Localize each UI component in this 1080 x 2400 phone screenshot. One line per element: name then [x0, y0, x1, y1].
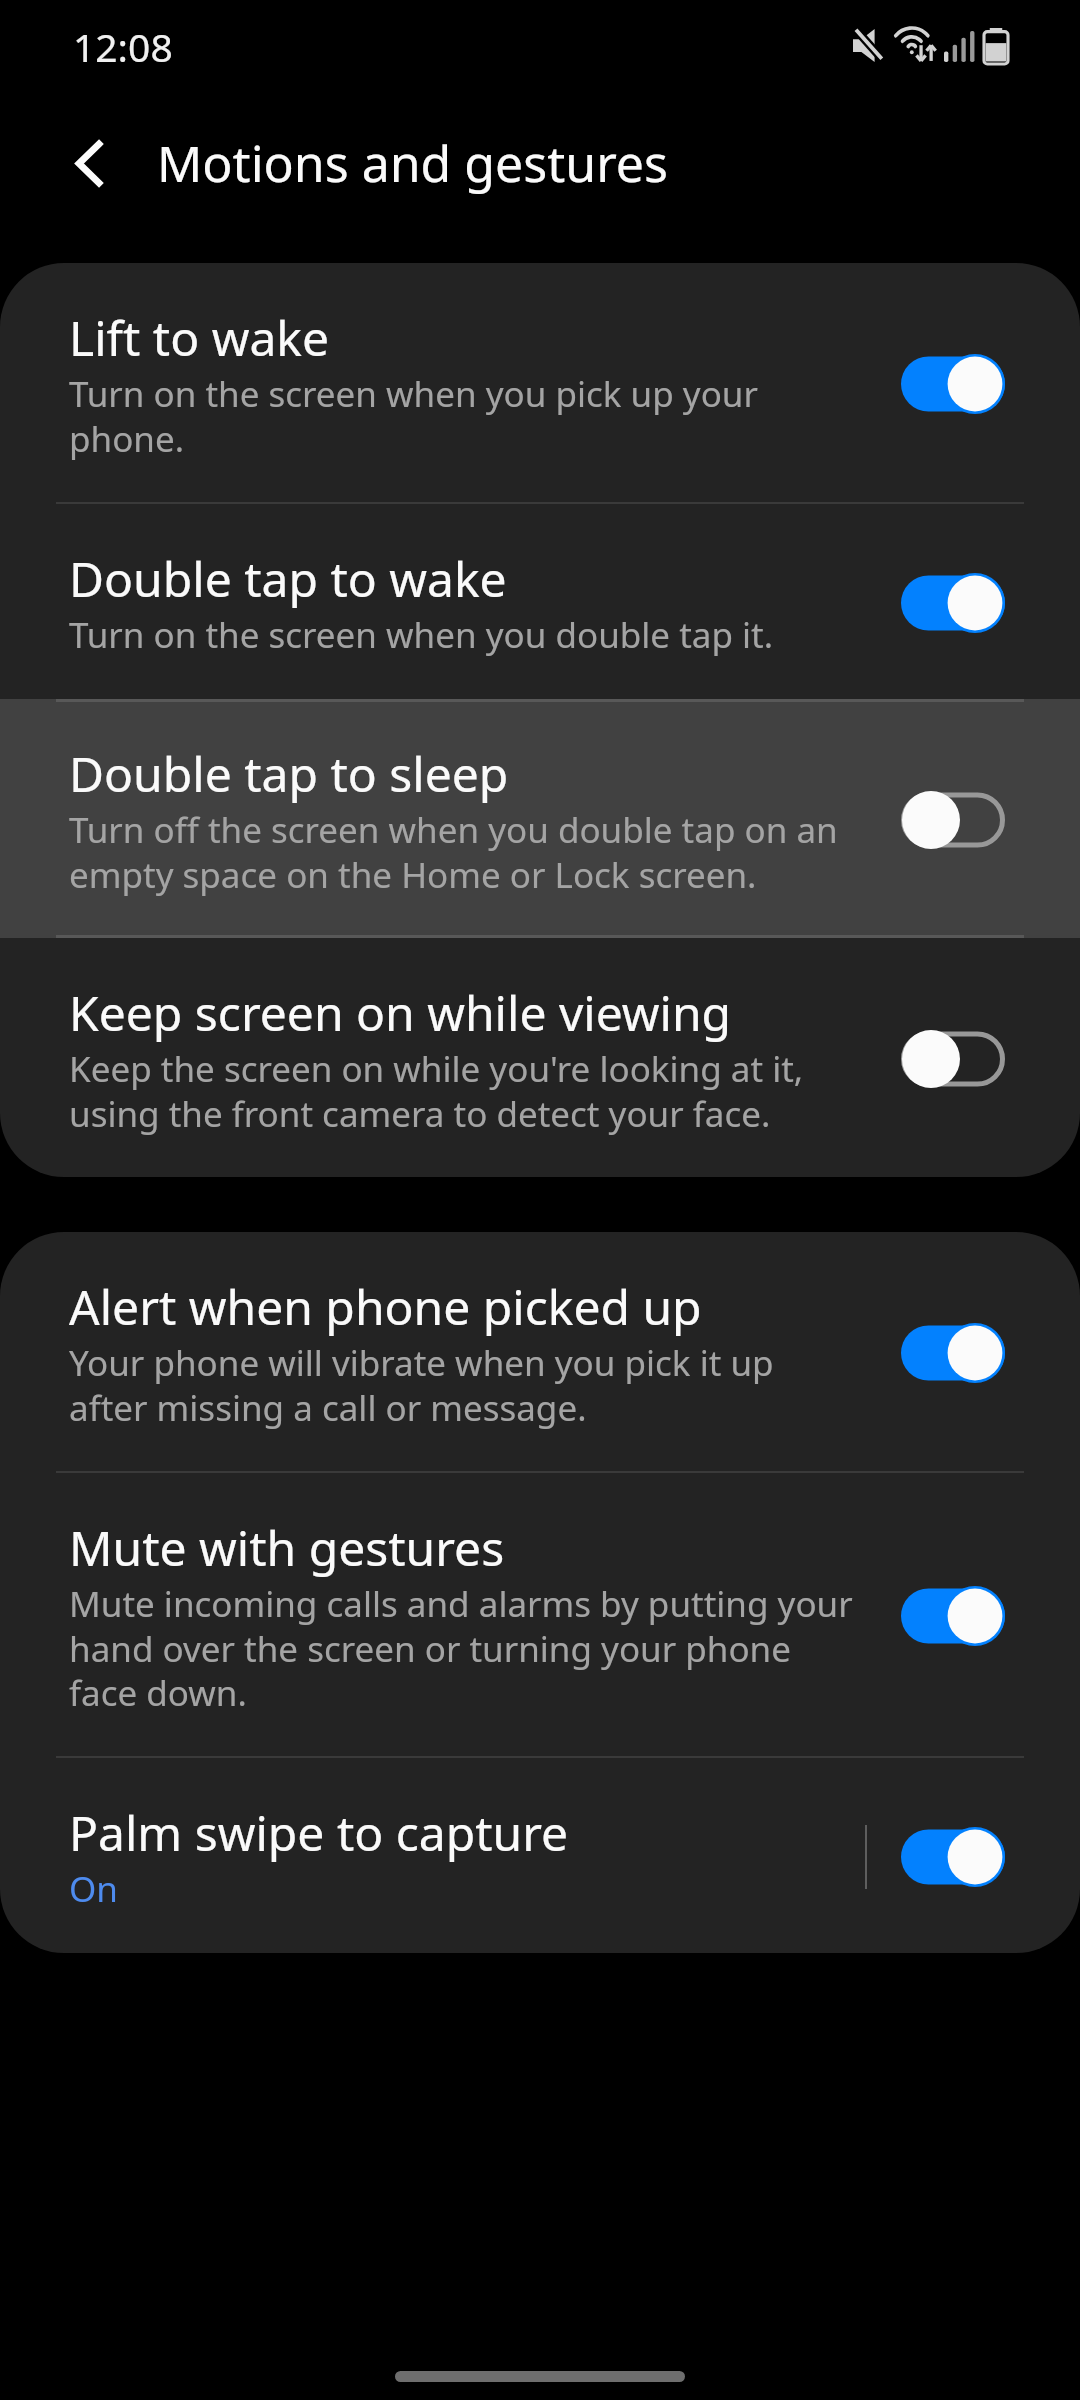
button[interactable]: Double tap to sleep: [0, 699, 1080, 938]
staticText: Keep the screen on while you're looking …: [69, 1045, 804, 1137]
button[interactable]: On: [901, 573, 1005, 633]
button[interactable]: Off: [901, 790, 1005, 850]
staticText: Mute incoming calls and alarms by puttin…: [69, 1580, 853, 1716]
staticText: Your phone will vibrate when you pick it…: [69, 1339, 774, 1431]
staticText: On: [69, 1865, 118, 1913]
staticText: Turn off the screen when you double tap …: [69, 806, 838, 898]
button[interactable]: On: [901, 1323, 1005, 1383]
button[interactable]: Keep screen on while viewing: [0, 938, 1080, 1177]
staticText: Turn on the screen when you double tap i…: [69, 611, 774, 659]
button[interactable]: Palm swipe to capture: [0, 1758, 1080, 1953]
button[interactable]: Off: [901, 1029, 1005, 1089]
button[interactable]: Back: [51, 125, 127, 201]
button[interactable]: On: [901, 1586, 1005, 1646]
staticText: Double tap to sleep: [69, 741, 509, 806]
staticText: Alert when phone picked up: [69, 1274, 702, 1339]
staticText: 12:08: [73, 20, 173, 73]
button[interactable]: Double tap to wake: [0, 504, 1080, 699]
staticText: Turn on the screen when you pick up your…: [69, 370, 758, 462]
button[interactable]: On: [901, 1827, 1005, 1887]
button[interactable]: Alert when phone picked up: [0, 1232, 1080, 1471]
staticText: Lift to wake: [69, 305, 330, 370]
staticText: Mute with gestures: [69, 1515, 505, 1580]
button[interactable]: On: [901, 354, 1005, 414]
staticText: Double tap to wake: [69, 546, 507, 611]
button[interactable]: Lift to wake: [0, 263, 1080, 502]
staticText: Palm swipe to capture: [69, 1800, 569, 1865]
staticText: Keep screen on while viewing: [69, 980, 732, 1045]
staticText: Motions and gestures: [157, 129, 668, 197]
button[interactable]: Mute with gestures: [0, 1473, 1080, 1756]
